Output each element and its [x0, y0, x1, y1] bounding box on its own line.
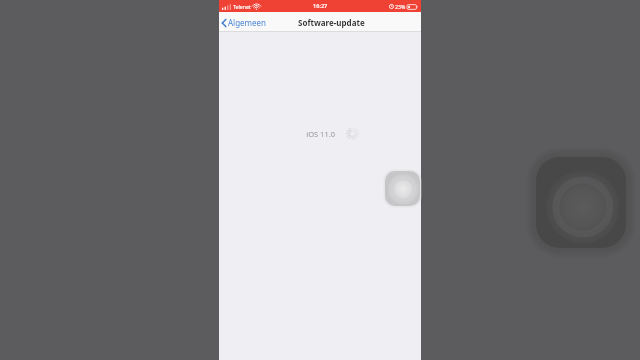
- staticText: Software-update: [298, 17, 365, 28]
- staticText: iOS 11.0: [219, 129, 335, 139]
- staticText: Telenet: [233, 3, 251, 10]
- button[interactable]: Algemeen: [221, 17, 267, 28]
- button[interactable]: AssistiveTouch: [536, 157, 626, 248]
- button[interactable]: AssistiveTouch: [385, 171, 420, 206]
- staticText: 16:27: [313, 2, 328, 10]
- staticText: Algemeen: [228, 17, 267, 28]
- staticText: 23%: [395, 3, 406, 10]
